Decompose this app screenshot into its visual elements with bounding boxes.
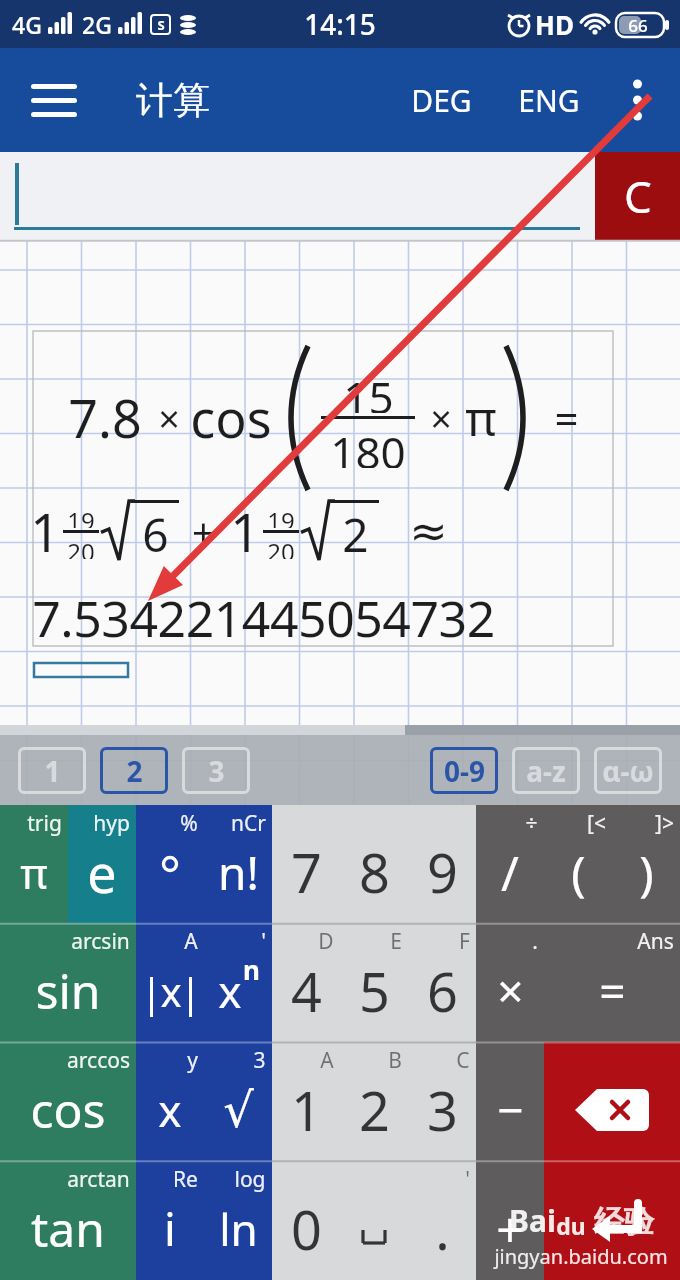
- staticText: .: [435, 1192, 450, 1266]
- staticText: S: [157, 16, 165, 34]
- staticText: 3: [427, 1073, 458, 1147]
- staticText: jingyan.baidu.com: [494, 1243, 668, 1270]
- staticText: x: [158, 1080, 182, 1140]
- staticText: 1: [291, 1073, 322, 1147]
- staticText: DEG: [411, 80, 472, 121]
- button[interactable]: [<: [544, 805, 612, 923]
- staticText: ': [465, 1165, 470, 1194]
- button[interactable]: A: [272, 1042, 340, 1161]
- staticText: %: [180, 809, 198, 838]
- staticText: 1: [44, 752, 61, 790]
- staticText: B: [388, 1046, 402, 1075]
- staticText: +: [496, 1196, 524, 1261]
- button[interactable]: E: [340, 923, 408, 1042]
- staticText: ×: [158, 392, 180, 444]
- button[interactable]: F: [408, 923, 476, 1042]
- staticText: ENG: [518, 80, 580, 121]
- button[interactable]: Ans: [544, 923, 680, 1042]
- staticText: y: [187, 1046, 198, 1075]
- button[interactable]: a-z: [512, 747, 580, 794]
- staticText: A: [184, 927, 198, 956]
- button[interactable]: D: [272, 923, 340, 1042]
- button[interactable]: [594, 60, 680, 140]
- staticText: e: [87, 837, 117, 908]
- staticText: trig: [27, 809, 62, 838]
- button[interactable]: ': [408, 1161, 476, 1280]
- button[interactable]: A: [136, 923, 204, 1042]
- staticText: |x|: [140, 964, 200, 1018]
- staticText: 14:15: [304, 5, 376, 43]
- button[interactable]: hyp: [68, 805, 136, 923]
- button[interactable]: ENG: [518, 60, 580, 141]
- button[interactable]: 2: [100, 747, 168, 794]
- button[interactable]: α-ω: [594, 747, 662, 794]
- staticText: x: [218, 961, 242, 1021]
- button[interactable]: arcsin: [0, 923, 136, 1042]
- staticText: n: [243, 952, 260, 987]
- staticText: .: [532, 927, 538, 956]
- button[interactable]: +: [476, 1161, 544, 1280]
- staticText: 19: [267, 504, 295, 528]
- button[interactable]: DEG: [411, 60, 472, 141]
- button[interactable]: [340, 1161, 408, 1280]
- button[interactable]: 3: [182, 747, 250, 794]
- staticText: 66: [628, 14, 648, 37]
- staticText: +: [192, 504, 215, 558]
- staticText: 1: [230, 496, 260, 567]
- button[interactable]: [22, 68, 86, 132]
- staticText: 8: [359, 835, 390, 909]
- button[interactable]: Re: [136, 1161, 204, 1280]
- button[interactable]: trig: [0, 805, 68, 923]
- button[interactable]: ÷: [476, 805, 544, 923]
- staticText: 5: [359, 954, 390, 1028]
- staticText: 2: [359, 1073, 390, 1147]
- staticText: a-z: [526, 752, 566, 790]
- staticText: arccos: [67, 1046, 130, 1075]
- button[interactable]: nCr: [204, 805, 272, 923]
- staticText: 4: [291, 954, 322, 1028]
- button[interactable]: 8: [340, 805, 408, 923]
- staticText: π: [465, 385, 497, 450]
- staticText: α-ω: [602, 752, 654, 790]
- staticText: ]>: [655, 809, 674, 838]
- staticText: =: [554, 389, 579, 446]
- button[interactable]: −: [476, 1042, 544, 1161]
- staticText: C: [624, 166, 652, 226]
- button[interactable]: arccos: [0, 1042, 136, 1161]
- button[interactable]: y: [136, 1042, 204, 1161]
- button[interactable]: arctan: [0, 1161, 136, 1280]
- staticText: 15: [343, 367, 394, 413]
- staticText: 4G: [12, 9, 42, 40]
- staticText: 3: [253, 1046, 266, 1075]
- button[interactable]: 1: [18, 747, 86, 794]
- button[interactable]: C: [408, 1042, 476, 1161]
- button[interactable]: 3: [204, 1042, 272, 1161]
- button[interactable]: ': [204, 923, 272, 1042]
- button[interactable]: .: [476, 923, 544, 1042]
- staticText: cos: [30, 1077, 106, 1142]
- staticText: 9: [427, 835, 458, 909]
- staticText: Bai: [509, 1200, 556, 1241]
- staticText: 6: [142, 503, 169, 565]
- button[interactable]: [544, 1161, 680, 1280]
- staticText: F: [459, 927, 470, 956]
- staticText: ': [261, 927, 266, 956]
- staticText: π: [20, 844, 48, 901]
- staticText: ×: [497, 959, 524, 1022]
- button[interactable]: B: [340, 1042, 408, 1161]
- staticText: 0: [291, 1192, 322, 1266]
- button[interactable]: 7: [272, 805, 340, 923]
- button[interactable]: ]>: [612, 805, 680, 923]
- button[interactable]: 9: [408, 805, 476, 923]
- button[interactable]: log: [204, 1161, 272, 1280]
- staticText: cos: [190, 382, 272, 453]
- button[interactable]: [544, 1042, 680, 1161]
- button[interactable]: %: [136, 805, 204, 923]
- staticText: Re: [173, 1165, 198, 1194]
- button[interactable]: C: [595, 152, 680, 240]
- staticText: hyp: [93, 809, 130, 838]
- staticText: log: [234, 1165, 266, 1194]
- staticText: √: [223, 1082, 254, 1138]
- button[interactable]: 0-9: [430, 747, 498, 794]
- button[interactable]: 0: [272, 1161, 340, 1280]
